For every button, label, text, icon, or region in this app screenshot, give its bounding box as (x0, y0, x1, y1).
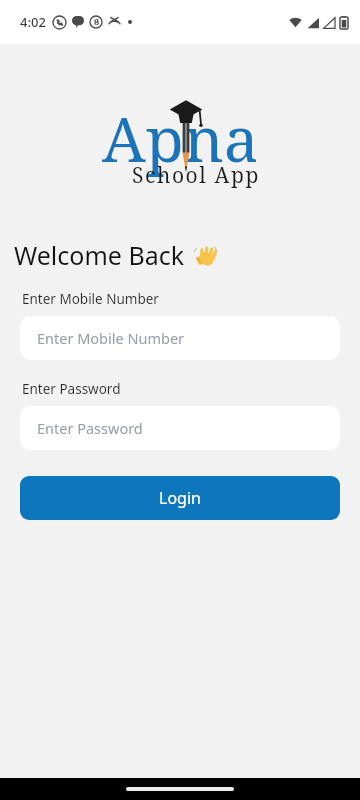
staticText: Welcome Back (14, 238, 185, 272)
staticText: Login (159, 487, 201, 509)
button[interactable]: Enter Password (20, 406, 340, 450)
button[interactable]: Login (20, 476, 340, 520)
staticText: Enter Mobile Number (22, 290, 360, 308)
staticText: School App (132, 161, 260, 190)
staticText: Enter Password (22, 380, 360, 398)
staticText: Apna (102, 96, 259, 180)
staticText: Enter Password (37, 418, 143, 438)
staticText: 4:02 (20, 13, 46, 31)
button[interactable]: Enter Mobile Number (20, 316, 340, 360)
staticText: Enter Mobile Number (37, 328, 185, 348)
